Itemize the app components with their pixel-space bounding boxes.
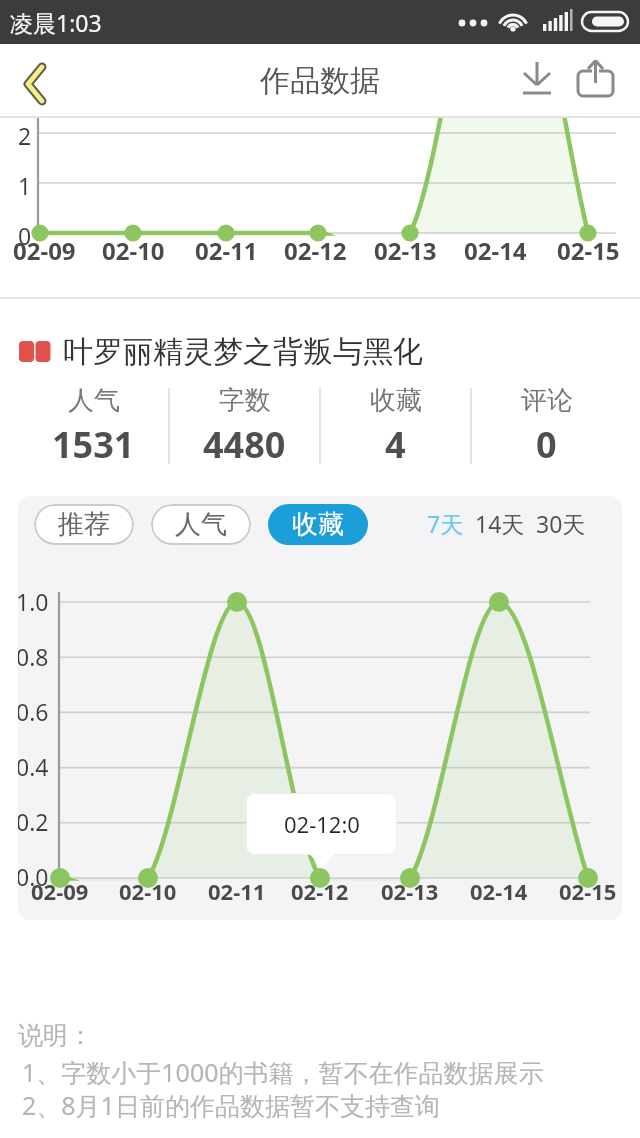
staticText: 0 <box>536 420 557 469</box>
staticText: 02-09 <box>31 876 89 906</box>
staticText: 说明： <box>18 1020 93 1051</box>
button[interactable]: 人气 <box>18 384 169 474</box>
staticText: 0.4 <box>18 751 49 782</box>
button[interactable]: 收藏 <box>268 504 368 545</box>
staticText: 02-10 <box>119 876 177 906</box>
staticText: 02-13 <box>381 876 439 906</box>
button[interactable]: 评论 <box>471 384 622 474</box>
staticText: 0.2 <box>18 806 49 837</box>
staticText: 02-11 <box>195 234 258 267</box>
staticText: 02-10 <box>102 234 165 267</box>
staticText: 02-14 <box>464 234 527 267</box>
staticText: 4480 <box>203 420 286 469</box>
staticText: 1531 <box>52 420 135 469</box>
staticText: 1.0 <box>18 586 49 617</box>
staticText: 人气 <box>175 508 227 541</box>
button[interactable]: 推荐 <box>34 504 134 545</box>
staticText: 0.0 <box>18 861 49 892</box>
button[interactable]: 30天 <box>536 508 586 539</box>
staticText: 收藏 <box>370 384 422 417</box>
button[interactable]: 叶罗丽精灵梦之背叛与黑化 <box>19 333 423 371</box>
staticText: 评论 <box>521 384 573 417</box>
staticText: 2、8月1日前的作品数据暂不支持查询 <box>22 1088 440 1122</box>
staticText: 凌晨1:03 <box>10 7 102 38</box>
staticText: 02-15 <box>559 876 617 906</box>
staticText: 人气 <box>68 384 120 417</box>
staticText: 作品数据 <box>260 62 380 100</box>
staticText: 02-14 <box>470 876 528 906</box>
button[interactable] <box>570 53 626 109</box>
staticText: 02-13 <box>374 234 437 267</box>
staticText: 0.6 <box>18 696 49 727</box>
button[interactable] <box>0 44 74 118</box>
staticText: 2 <box>18 120 32 151</box>
staticText: 4 <box>385 420 406 469</box>
staticText: 02-12:0 <box>284 809 360 839</box>
button[interactable] <box>512 53 568 109</box>
staticText: 1 <box>18 170 32 201</box>
button[interactable]: 收藏 <box>320 384 471 474</box>
staticText: 字数 <box>219 384 271 417</box>
staticText: 1、字数小于1000的书籍，暂不在作品数据展示 <box>22 1055 544 1089</box>
staticText: 02-12 <box>284 234 347 267</box>
staticText: 收藏 <box>292 508 344 541</box>
button[interactable]: 人气 <box>151 504 251 545</box>
button[interactable]: 字数 <box>169 384 320 474</box>
button[interactable]: 14天 <box>475 508 525 539</box>
button[interactable]: 7天 <box>427 508 464 539</box>
staticText: 叶罗丽精灵梦之背叛与黑化 <box>63 333 423 371</box>
staticText: 0 <box>18 220 32 251</box>
staticText: 02-11 <box>208 876 266 906</box>
staticText: 02-09 <box>13 234 76 267</box>
staticText: 推荐 <box>58 508 110 541</box>
staticText: 0.8 <box>18 641 49 672</box>
staticText: 02-12 <box>291 876 349 906</box>
staticText: 02-15 <box>557 234 620 267</box>
